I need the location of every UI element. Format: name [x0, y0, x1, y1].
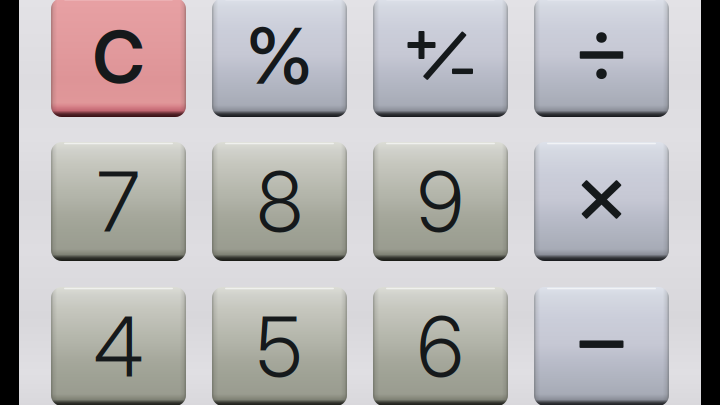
staticText: 6: [417, 296, 464, 396]
button[interactable]: Multiply: [534, 142, 669, 261]
button[interactable]: 9: [373, 142, 508, 261]
staticText: %: [245, 9, 313, 102]
button[interactable]: 8: [212, 142, 347, 261]
button[interactable]: Minus: [534, 287, 669, 405]
button[interactable]: 5: [212, 287, 347, 405]
button[interactable]: 6: [373, 287, 508, 405]
staticText: 4: [93, 296, 143, 396]
button[interactable]: 4: [51, 287, 186, 405]
button[interactable]: 7: [51, 142, 186, 261]
button[interactable]: Divide: [534, 0, 669, 117]
button[interactable]: Plus minus: [373, 0, 508, 117]
staticText: 5: [256, 296, 302, 396]
staticText: 8: [256, 151, 302, 251]
staticText: 7: [97, 151, 140, 251]
button[interactable]: %: [212, 0, 347, 117]
button[interactable]: C: [51, 0, 186, 117]
staticText: 9: [417, 151, 464, 251]
staticText: C: [92, 13, 144, 100]
